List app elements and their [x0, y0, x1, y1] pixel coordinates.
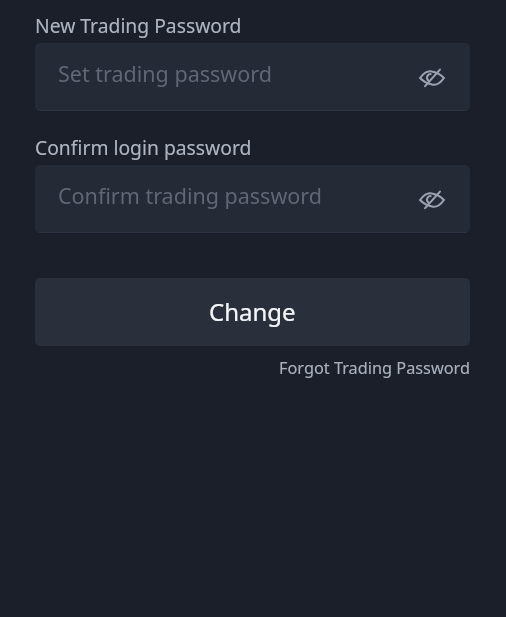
staticText: New Trading Password — [35, 12, 242, 38]
staticText: Set trading password — [58, 59, 272, 88]
staticText: Confirm trading password — [58, 181, 322, 210]
staticText: Change — [209, 295, 296, 328]
button[interactable]: Set trading password — [35, 43, 470, 111]
button[interactable]: Forgot Trading Password — [279, 357, 470, 379]
button[interactable]: Toggle password visibility — [415, 183, 449, 217]
button[interactable]: Toggle password visibility — [415, 61, 449, 95]
button[interactable]: Change — [35, 278, 470, 346]
button[interactable]: Confirm trading password — [35, 165, 470, 233]
staticText: Confirm login password — [35, 134, 252, 160]
